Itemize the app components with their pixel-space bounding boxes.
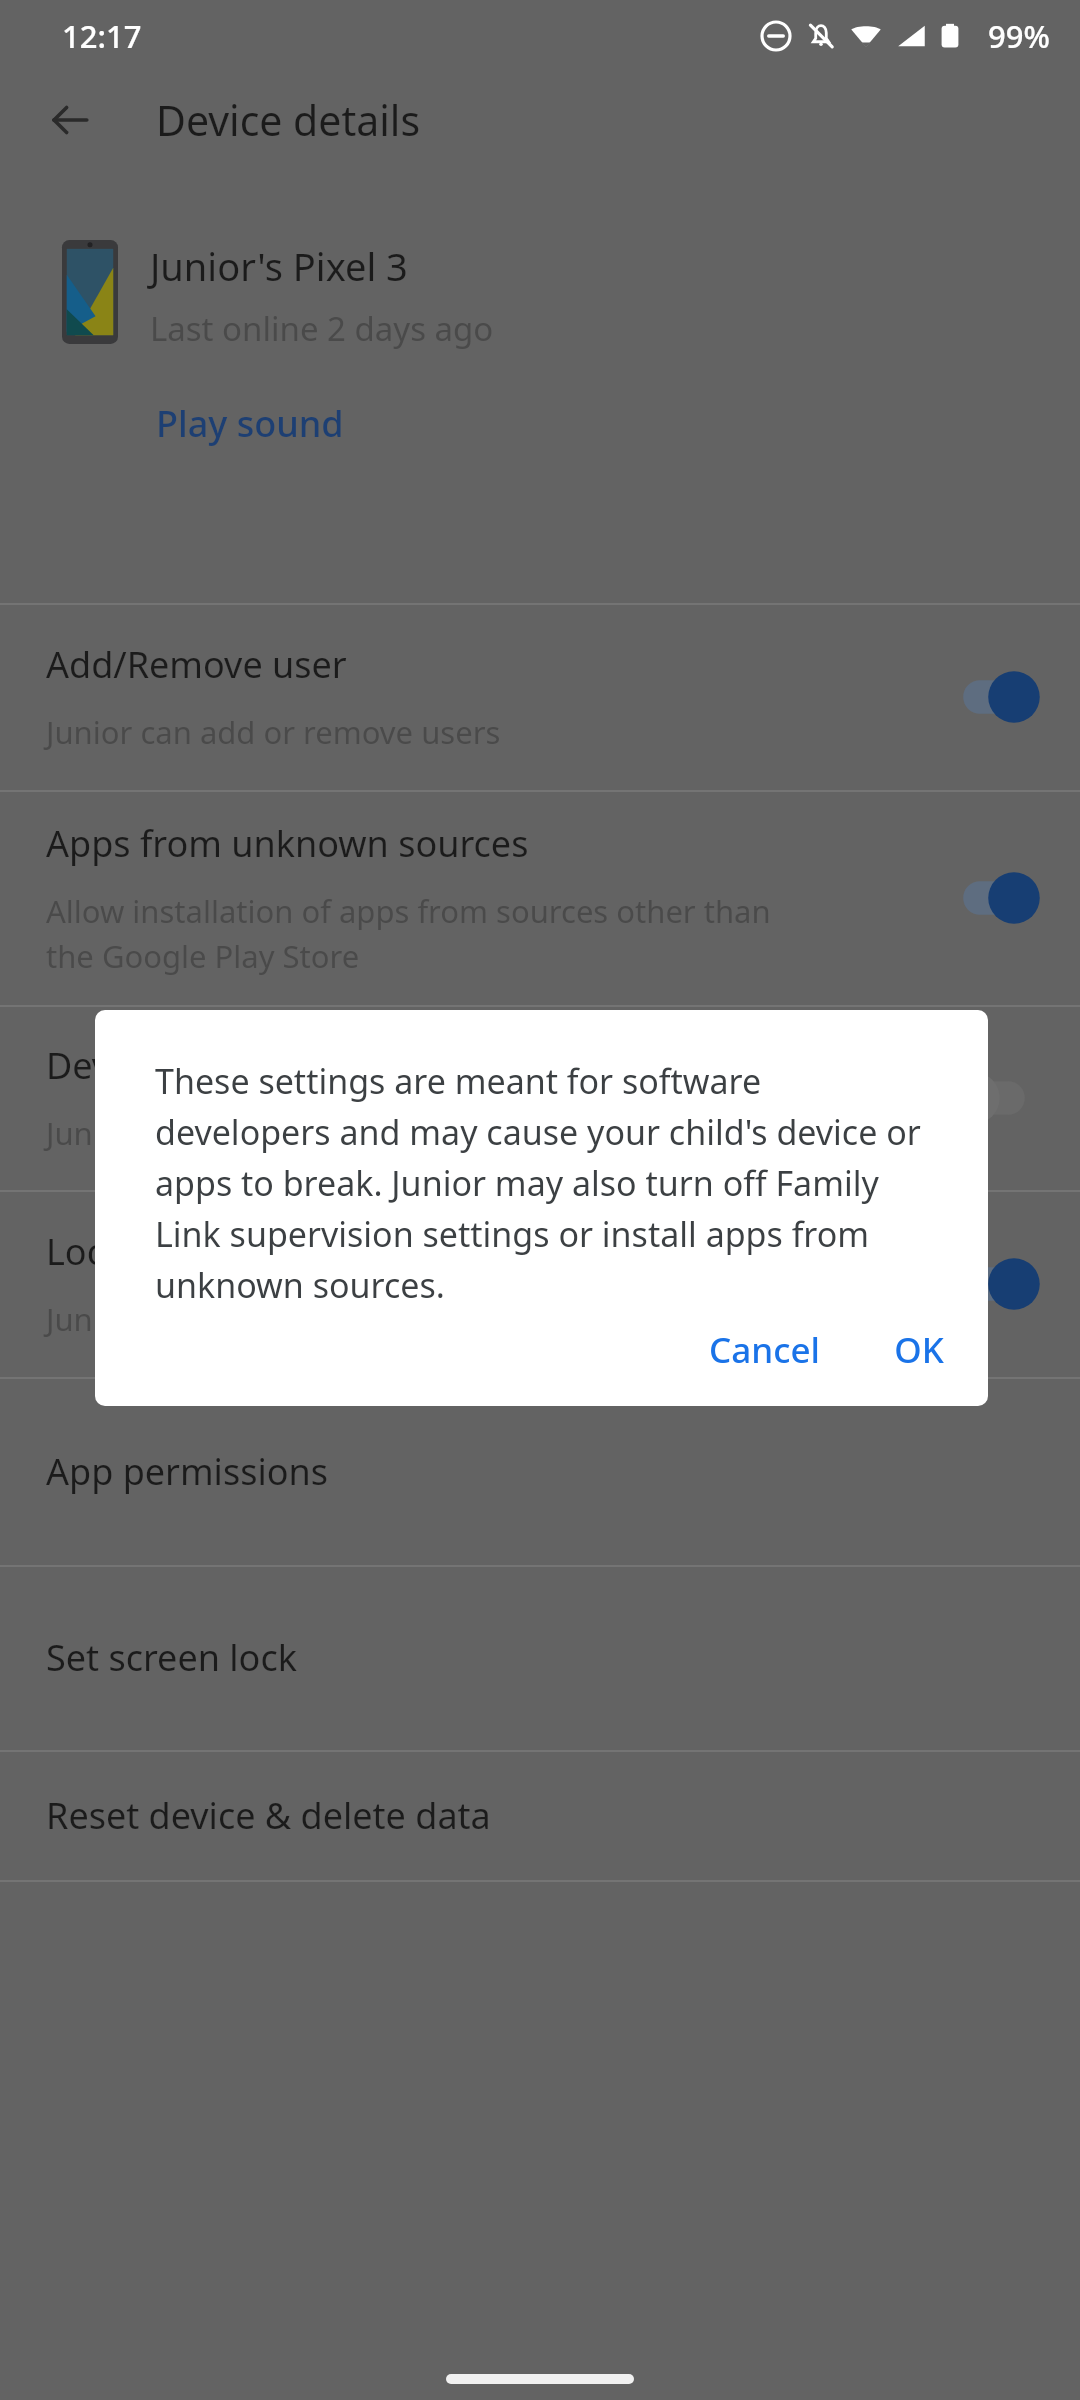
button[interactable]: On	[948, 862, 1040, 934]
button[interactable]: Reset device & delete data	[0, 1750, 1080, 1880]
button[interactable]: OK	[868, 1304, 970, 1396]
staticText: Junior's Pixel 3	[150, 240, 408, 292]
button[interactable]: Back	[34, 84, 106, 156]
staticText: Cancel	[709, 1326, 820, 1374]
staticText: Junior can use developer options	[46, 1112, 523, 1154]
staticText: 99%	[988, 15, 1050, 57]
button[interactable]: Developer options	[0, 1005, 1080, 1190]
button[interactable]: Cancel	[683, 1304, 846, 1396]
button[interactable]: Set screen lock	[0, 1565, 1080, 1750]
staticText: Location	[46, 1227, 191, 1276]
staticText: Junior can add or remove users	[46, 711, 501, 753]
button[interactable]: Play sound	[152, 393, 348, 454]
staticText: Last online 2 days ago	[150, 306, 494, 351]
button[interactable]: On	[948, 661, 1040, 733]
staticText: These settings are meant for software de…	[155, 1058, 940, 1308]
staticText: Add/Remove user	[46, 640, 347, 689]
button[interactable]: Apps from unknown sources	[0, 790, 1080, 1005]
button[interactable]: Add/Remove user	[0, 603, 1080, 790]
button[interactable]: Off	[948, 1062, 1040, 1134]
staticText: App permissions	[46, 1447, 328, 1496]
button[interactable]: Location	[0, 1190, 1080, 1377]
button[interactable]: App permissions	[0, 1377, 1080, 1565]
staticText: Allow installation of apps from sources …	[46, 890, 771, 977]
staticText: Reset device & delete data	[46, 1791, 491, 1840]
staticText: Set screen lock	[46, 1633, 297, 1682]
staticText: Play sound	[156, 399, 344, 448]
staticText: Junior's device location is on	[46, 1298, 456, 1340]
staticText: Developer options	[46, 1041, 356, 1090]
button[interactable]: On	[948, 1248, 1040, 1320]
staticText: 12:17	[62, 15, 142, 57]
staticText: Apps from unknown sources	[46, 819, 529, 868]
staticText: Device details	[156, 92, 421, 148]
staticText: OK	[894, 1326, 944, 1374]
